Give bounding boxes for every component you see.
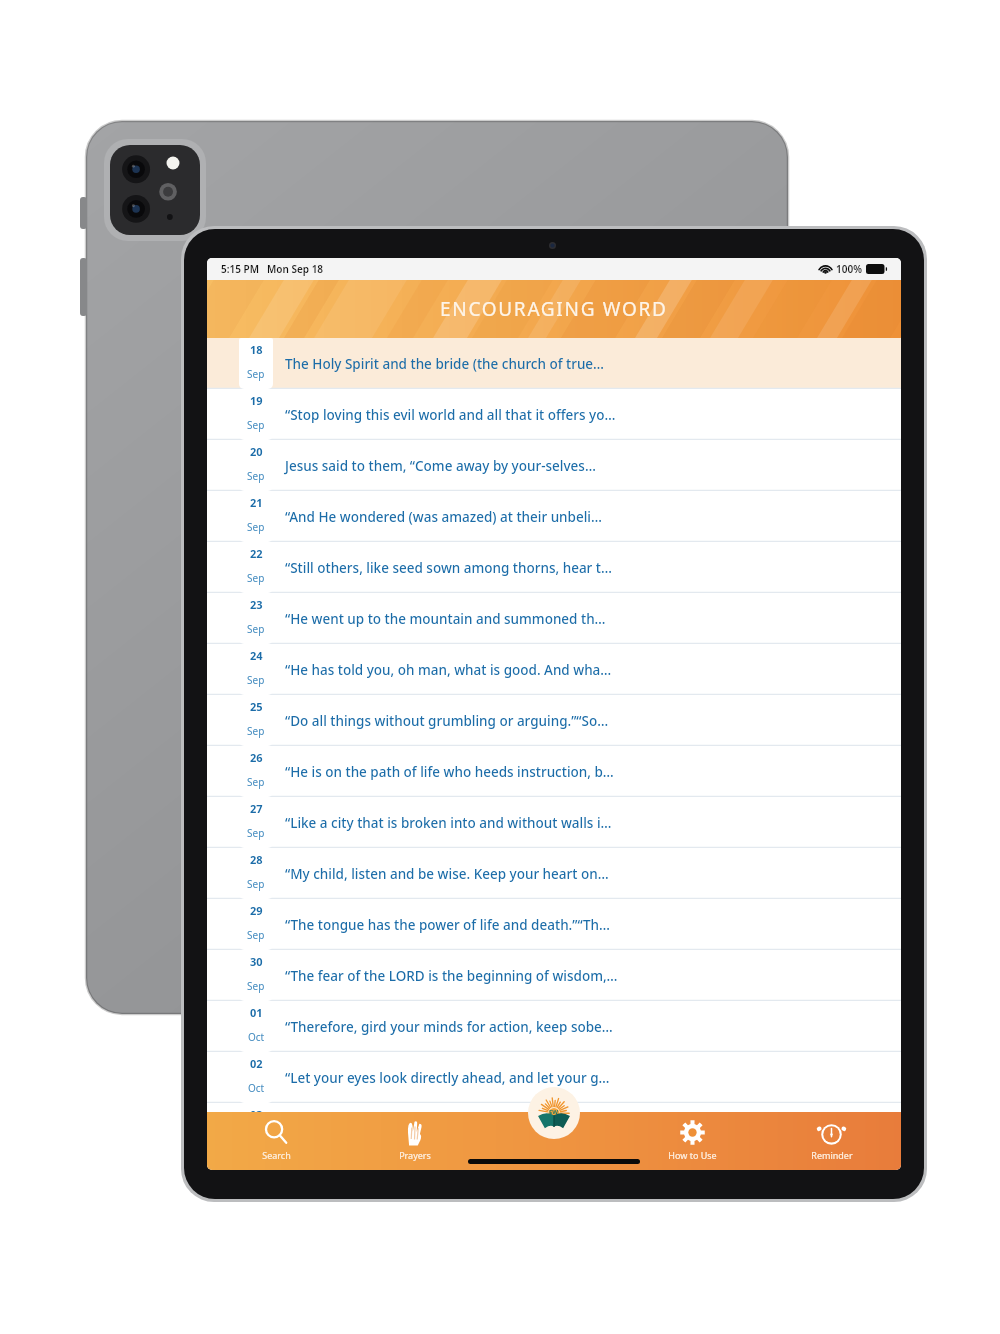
button[interactable]: 25 xyxy=(207,695,901,746)
staticText: 18 xyxy=(250,342,263,357)
staticText: 01 xyxy=(250,1005,263,1020)
staticText: Prayers xyxy=(399,1149,431,1161)
staticText: 24 xyxy=(250,648,263,663)
staticText: Sep xyxy=(247,877,265,891)
staticText: Oct xyxy=(248,1081,265,1095)
staticText: “My child, listen and be wise. Keep your… xyxy=(285,865,609,883)
staticText: Sep xyxy=(247,367,265,381)
staticText: Sep xyxy=(247,826,265,840)
staticText: “And He wondered (was amazed) at their u… xyxy=(285,508,602,526)
button[interactable]: Encouraging Word home xyxy=(528,1087,580,1139)
button[interactable]: 03 xyxy=(207,1103,901,1154)
staticText: 03 xyxy=(250,1107,263,1122)
staticText: Jesus said to them, “Come away by your-s… xyxy=(285,457,596,475)
staticText: “Let your eyes look directly ahead, and … xyxy=(285,1069,610,1087)
button[interactable]: 30 xyxy=(207,950,901,1001)
button[interactable]: 21 xyxy=(207,491,901,542)
staticText: “Therefore, gird your minds for action, … xyxy=(285,1018,613,1036)
staticText: 20 xyxy=(250,444,263,459)
staticText: 23 xyxy=(250,597,263,612)
staticText: Sep xyxy=(247,622,265,636)
staticText: 26 xyxy=(250,750,263,765)
staticText: “He went up to the mountain and summoned… xyxy=(285,610,606,628)
button[interactable]: 20 xyxy=(207,440,901,491)
staticText: Sep xyxy=(247,418,265,432)
staticText: 100% xyxy=(836,262,862,276)
other: Search xyxy=(263,1119,290,1146)
staticText: “Still others, like seed sown among thor… xyxy=(285,559,612,577)
staticText: “Though He slay me, yet will I trust in … xyxy=(285,1120,572,1138)
staticText: 19 xyxy=(250,393,263,408)
staticText: “The fear of the LORD is the beginning o… xyxy=(285,967,618,985)
staticText: 21 xyxy=(250,495,263,510)
staticText: 25 xyxy=(250,699,263,714)
staticText: Sep xyxy=(247,673,265,687)
staticText: 28 xyxy=(250,852,263,867)
staticText: Search xyxy=(262,1149,291,1161)
button[interactable]: 23 xyxy=(207,593,901,644)
other: Prayers xyxy=(401,1119,428,1146)
staticText: 02 xyxy=(250,1056,263,1071)
staticText: EW xyxy=(549,1108,559,1116)
staticText: “Like a city that is broken into and wit… xyxy=(285,814,612,832)
staticText: 22 xyxy=(250,546,263,561)
staticText: 30 xyxy=(250,954,263,969)
staticText: Reminder xyxy=(811,1149,853,1161)
staticText: Mon Sep 18 xyxy=(267,262,324,276)
staticText: Sep xyxy=(247,571,265,585)
button[interactable]: 02 xyxy=(207,1052,901,1103)
button[interactable]: 27 xyxy=(207,797,901,848)
button[interactable]: 24 xyxy=(207,644,901,695)
button[interactable]: 28 xyxy=(207,848,901,899)
staticText: Oct xyxy=(248,1030,265,1044)
staticText: “Do all things without grumbling or argu… xyxy=(285,712,609,730)
staticText: How to Use xyxy=(668,1149,717,1161)
other: How to Use xyxy=(679,1119,706,1146)
staticText: “He has told you, oh man, what is good. … xyxy=(285,661,612,679)
staticText: Sep xyxy=(247,928,265,942)
button[interactable]: 19 xyxy=(207,389,901,440)
button[interactable]: 26 xyxy=(207,746,901,797)
staticText: Sep xyxy=(247,469,265,483)
button[interactable]: How to Use xyxy=(623,1112,762,1170)
button[interactable]: Search xyxy=(207,1112,345,1170)
staticText: “The tongue has the power of life and de… xyxy=(285,916,610,934)
staticText: 27 xyxy=(250,801,263,816)
button[interactable]: Prayers xyxy=(345,1112,484,1170)
button[interactable]: Reminder xyxy=(762,1112,901,1170)
staticText: Sep xyxy=(247,520,265,534)
staticText: 29 xyxy=(250,903,263,918)
button[interactable]: 18 xyxy=(207,338,901,389)
staticText: Sep xyxy=(247,979,265,993)
staticText: 5:15 PM xyxy=(221,262,259,276)
staticText: Sep xyxy=(247,775,265,789)
button[interactable]: 29 xyxy=(207,899,901,950)
staticText: Sep xyxy=(247,724,265,738)
staticText: “Stop loving this evil world and all tha… xyxy=(285,406,616,424)
button[interactable]: 01 xyxy=(207,1001,901,1052)
button[interactable]: 22 xyxy=(207,542,901,593)
staticText: “He is on the path of life who heeds ins… xyxy=(285,763,614,781)
staticText: The Holy Spirit and the bride (the churc… xyxy=(285,355,605,373)
staticText: ENCOURAGING WORD xyxy=(440,296,668,322)
other: Reminder xyxy=(818,1119,845,1146)
